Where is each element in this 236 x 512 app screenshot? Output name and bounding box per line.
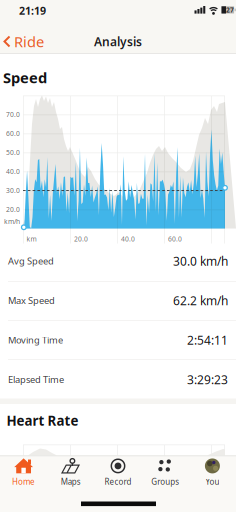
button[interactable]: Moving Time (8, 321, 228, 359)
staticText: Heart Rate (6, 412, 78, 429)
staticText: 70.0 (6, 110, 20, 119)
staticText: 62.2 km/h (173, 292, 228, 308)
staticText: Avg Speed (8, 255, 54, 267)
staticText: 20.0 (6, 205, 20, 214)
button[interactable]: Groups (142, 455, 189, 489)
staticText: 60.0 (168, 235, 182, 243)
staticText: 60.0 (6, 129, 20, 138)
staticText: You (205, 476, 219, 487)
staticText: Speed (3, 68, 47, 87)
staticText: 40.0 (121, 235, 135, 243)
staticText: km/h (4, 217, 20, 226)
staticText: Maps (61, 476, 81, 487)
staticText: 2:54:11 (187, 332, 228, 348)
staticText: Groups (151, 476, 179, 487)
staticText: Analysis (94, 33, 142, 49)
staticText: 50.0 (6, 148, 20, 157)
button[interactable]: Avg Speed (8, 242, 228, 280)
staticText: 27 (226, 6, 234, 14)
button[interactable]: Home (0, 455, 47, 489)
button[interactable]: Record (94, 455, 142, 489)
staticText: Moving Time (8, 334, 63, 346)
staticText: 30.0 (6, 186, 20, 195)
staticText: 40.0 (6, 167, 20, 176)
staticText: Elapsed Time (8, 373, 64, 386)
staticText: 3:29:23 (187, 371, 228, 387)
button[interactable]: You (189, 455, 236, 489)
staticText: Home (12, 476, 35, 487)
staticText: 20.0 (74, 235, 88, 243)
button[interactable]: Elapsed Time (8, 360, 228, 398)
staticText: km (26, 235, 36, 243)
staticText: Record (104, 476, 131, 487)
button[interactable]: Max Speed (8, 281, 228, 319)
staticText: 21:19 (19, 3, 46, 18)
button[interactable]: Ride (2, 31, 44, 51)
button[interactable]: Maps (47, 455, 94, 489)
staticText: 30.0 km/h (173, 253, 228, 269)
staticText: Max Speed (8, 294, 55, 307)
staticText: Ride (14, 32, 44, 51)
